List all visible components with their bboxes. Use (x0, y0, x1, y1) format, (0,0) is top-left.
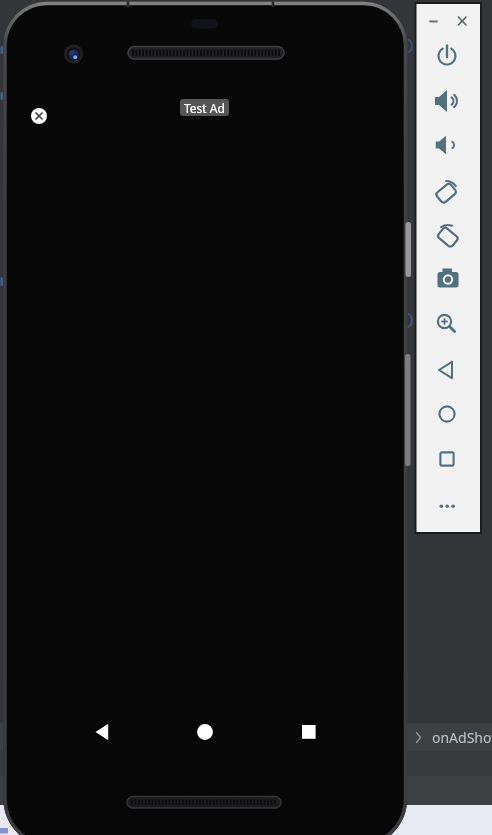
button[interactable]: onAdShow (432, 723, 492, 751)
staticText: Test Ad (184, 100, 225, 116)
button[interactable] (427, 441, 467, 477)
button[interactable] (286, 712, 330, 752)
button[interactable] (427, 38, 467, 74)
button[interactable] (427, 261, 467, 297)
button[interactable] (427, 306, 467, 342)
button[interactable] (427, 396, 467, 432)
button[interactable] (427, 488, 467, 524)
button[interactable] (80, 712, 124, 752)
staticText: onAdShow (432, 728, 492, 747)
button[interactable] (427, 218, 467, 254)
button[interactable] (427, 352, 467, 388)
button[interactable] (427, 127, 467, 163)
button[interactable] (427, 174, 467, 210)
button[interactable] (183, 712, 227, 752)
button[interactable]: Test Ad (180, 99, 229, 116)
button[interactable] (31, 108, 47, 124)
button[interactable] (427, 83, 467, 119)
